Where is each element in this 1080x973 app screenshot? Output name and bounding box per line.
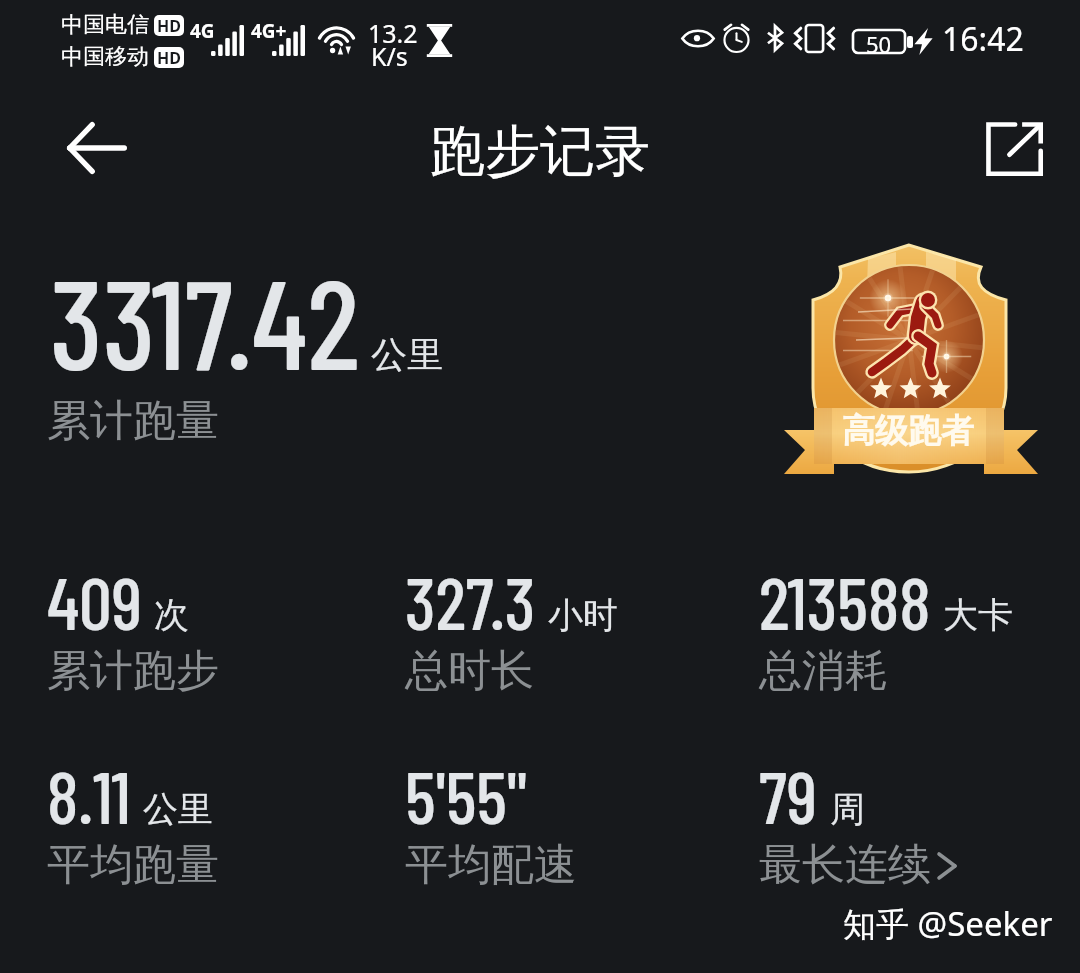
staticText: 中国移动 (61, 43, 149, 71)
staticText: K/s (371, 39, 408, 73)
staticText: 213588 (759, 557, 931, 645)
staticText: 平均配速 (405, 838, 577, 892)
staticText: HD (157, 15, 181, 36)
staticText: 327.3 (405, 557, 536, 645)
button[interactable]: Back (59, 110, 135, 186)
staticText: 8.11 (47, 751, 131, 839)
button[interactable]: 3317.42 (40, 240, 500, 455)
staticText: 4G+ (251, 18, 287, 44)
button[interactable]: 409 (47, 557, 367, 692)
button[interactable]: Share (972, 106, 1056, 190)
staticText: 409 (47, 557, 142, 645)
staticText: 高级跑者 (842, 410, 974, 452)
staticText: 中国电信 (61, 11, 149, 39)
staticText: 平均跑量 (47, 838, 219, 892)
staticText: 4G (190, 18, 215, 44)
staticText: 累计跑量 (47, 394, 219, 448)
staticText: 最长连续 (759, 838, 931, 892)
staticText: 79 (759, 751, 818, 839)
staticText: 周 (830, 787, 865, 831)
staticText: 总消耗 (759, 644, 888, 698)
staticText: 13.2 (368, 16, 418, 50)
button[interactable]: 8.11 (47, 751, 367, 886)
staticText: 累计跑步 (47, 644, 219, 698)
staticText: 跑步记录 (430, 117, 650, 186)
staticText: 次 (154, 593, 189, 637)
staticText: 50 (866, 29, 892, 52)
staticText: 知乎 @Seeker (843, 901, 1053, 946)
button[interactable]: 327.3 (405, 557, 725, 692)
staticText: 小时 (548, 593, 618, 637)
staticText: 5'55" (405, 751, 527, 839)
staticText: 大卡 (943, 593, 1013, 637)
button[interactable]: 79 (759, 751, 1079, 886)
button[interactable]: 高级跑者 runner badge (786, 236, 1036, 486)
staticText: 总时长 (405, 644, 534, 698)
button[interactable]: 5'55" (405, 751, 725, 886)
staticText: 16:42 (942, 17, 1024, 61)
button[interactable]: 213588 (759, 557, 1079, 692)
staticText: 公里 (143, 787, 213, 831)
staticText: 3317.42 (50, 244, 360, 395)
staticText: HD (157, 47, 181, 68)
staticText: 公里 (371, 332, 443, 377)
